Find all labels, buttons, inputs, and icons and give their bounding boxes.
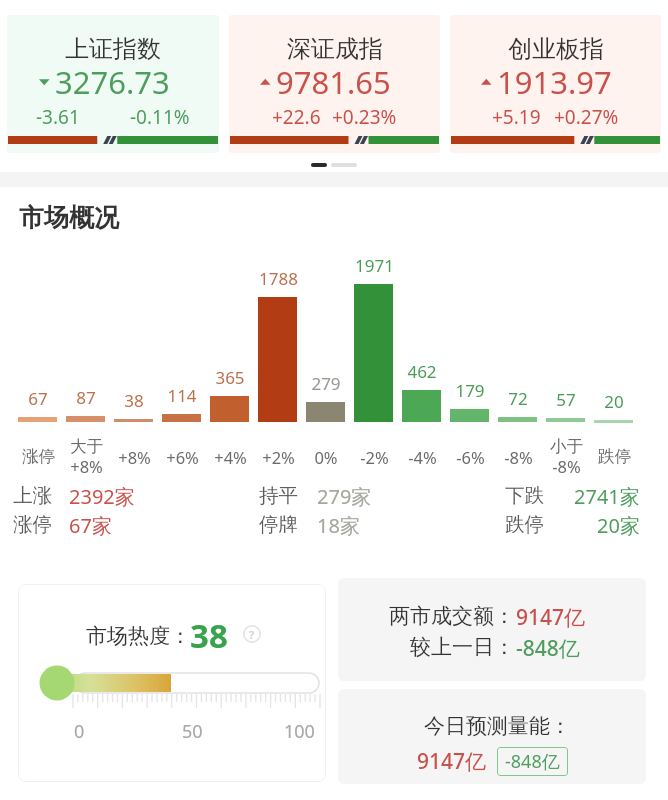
staticText: +8% [118, 446, 151, 468]
staticText: +6% [166, 446, 199, 468]
staticText: 18家 [317, 512, 360, 539]
staticText: +22.6 [272, 104, 321, 130]
staticText: -2% [360, 446, 389, 468]
staticText: -3.61 [36, 104, 80, 130]
staticText: +0.27% [554, 104, 619, 130]
button[interactable]: 深证成指 [229, 15, 440, 153]
staticText: 114 [167, 384, 197, 407]
staticText: +4% [214, 446, 247, 468]
staticText: ? [249, 627, 255, 642]
staticText: 上证指数 [65, 34, 161, 64]
staticText: -4% [408, 446, 437, 468]
button[interactable]: 帮助 [243, 625, 261, 643]
staticText: 50 [182, 719, 203, 744]
staticText: 持平 [259, 483, 298, 508]
staticText: 67 [28, 387, 48, 410]
staticText: 跌停 [505, 512, 544, 537]
staticText: 9781.65 [276, 61, 391, 103]
staticText: 1788 [259, 267, 298, 290]
staticText: 3276.73 [55, 61, 170, 103]
staticText: 9147亿 [516, 603, 586, 632]
staticText: 涨停 [22, 446, 55, 467]
staticText: 9147亿 [417, 747, 487, 776]
staticText: 2741家 [574, 483, 640, 510]
staticText: 67家 [69, 512, 112, 539]
button[interactable]: 两市成交额： [338, 578, 646, 681]
staticText: 462 [407, 360, 437, 383]
staticText: 创业板指 [508, 34, 604, 64]
staticText: -6% [456, 446, 485, 468]
staticText: -8% [504, 446, 533, 468]
staticText: 0% [314, 446, 338, 468]
staticText: 72 [508, 387, 528, 410]
staticText: 深证成指 [287, 34, 383, 64]
staticText: 38 [190, 613, 228, 658]
button[interactable]: 今日预测量能： [338, 689, 646, 784]
staticText: 今日预测量能： [424, 713, 571, 739]
staticText: 上涨 [13, 483, 52, 508]
staticText: 0 [74, 719, 85, 744]
button[interactable]: 上证指数 [7, 15, 219, 153]
staticText: +0.23% [332, 104, 397, 130]
staticText: 跌停 [598, 446, 631, 467]
staticText: 38 [124, 389, 144, 412]
staticText: -0.11% [130, 104, 190, 130]
staticText: 涨停 [13, 512, 52, 537]
button[interactable]: 市场热度： [18, 584, 326, 782]
staticText: 365 [215, 366, 245, 389]
staticText: 两市成交额： [389, 603, 515, 629]
staticText: 停牌 [259, 512, 298, 537]
staticText: 100 [284, 719, 315, 744]
staticText: 87 [76, 386, 96, 409]
staticText: 279家 [317, 483, 372, 510]
staticText: 20家 [597, 512, 640, 539]
staticText: 279 [311, 372, 341, 395]
staticText: 1913.97 [497, 61, 612, 103]
staticText: 市场热度： [86, 623, 191, 649]
staticText: 下跌 [505, 483, 544, 508]
staticText: 市场概况 [19, 202, 119, 233]
staticText: 小于 -8% [550, 436, 583, 478]
staticText: 较上一日： [410, 634, 515, 660]
staticText: 大于 +8% [70, 436, 103, 478]
staticText: -848亿 [516, 634, 580, 663]
staticText: 179 [455, 379, 485, 402]
staticText: 57 [556, 388, 576, 411]
staticText: +5.19 [492, 104, 541, 130]
staticText: 20 [604, 390, 624, 413]
staticText: -848亿 [505, 749, 560, 774]
staticText: +2% [262, 446, 295, 468]
staticText: 2392家 [69, 483, 135, 510]
staticText: 1971 [355, 254, 394, 277]
button[interactable]: 创业板指 [450, 15, 661, 153]
